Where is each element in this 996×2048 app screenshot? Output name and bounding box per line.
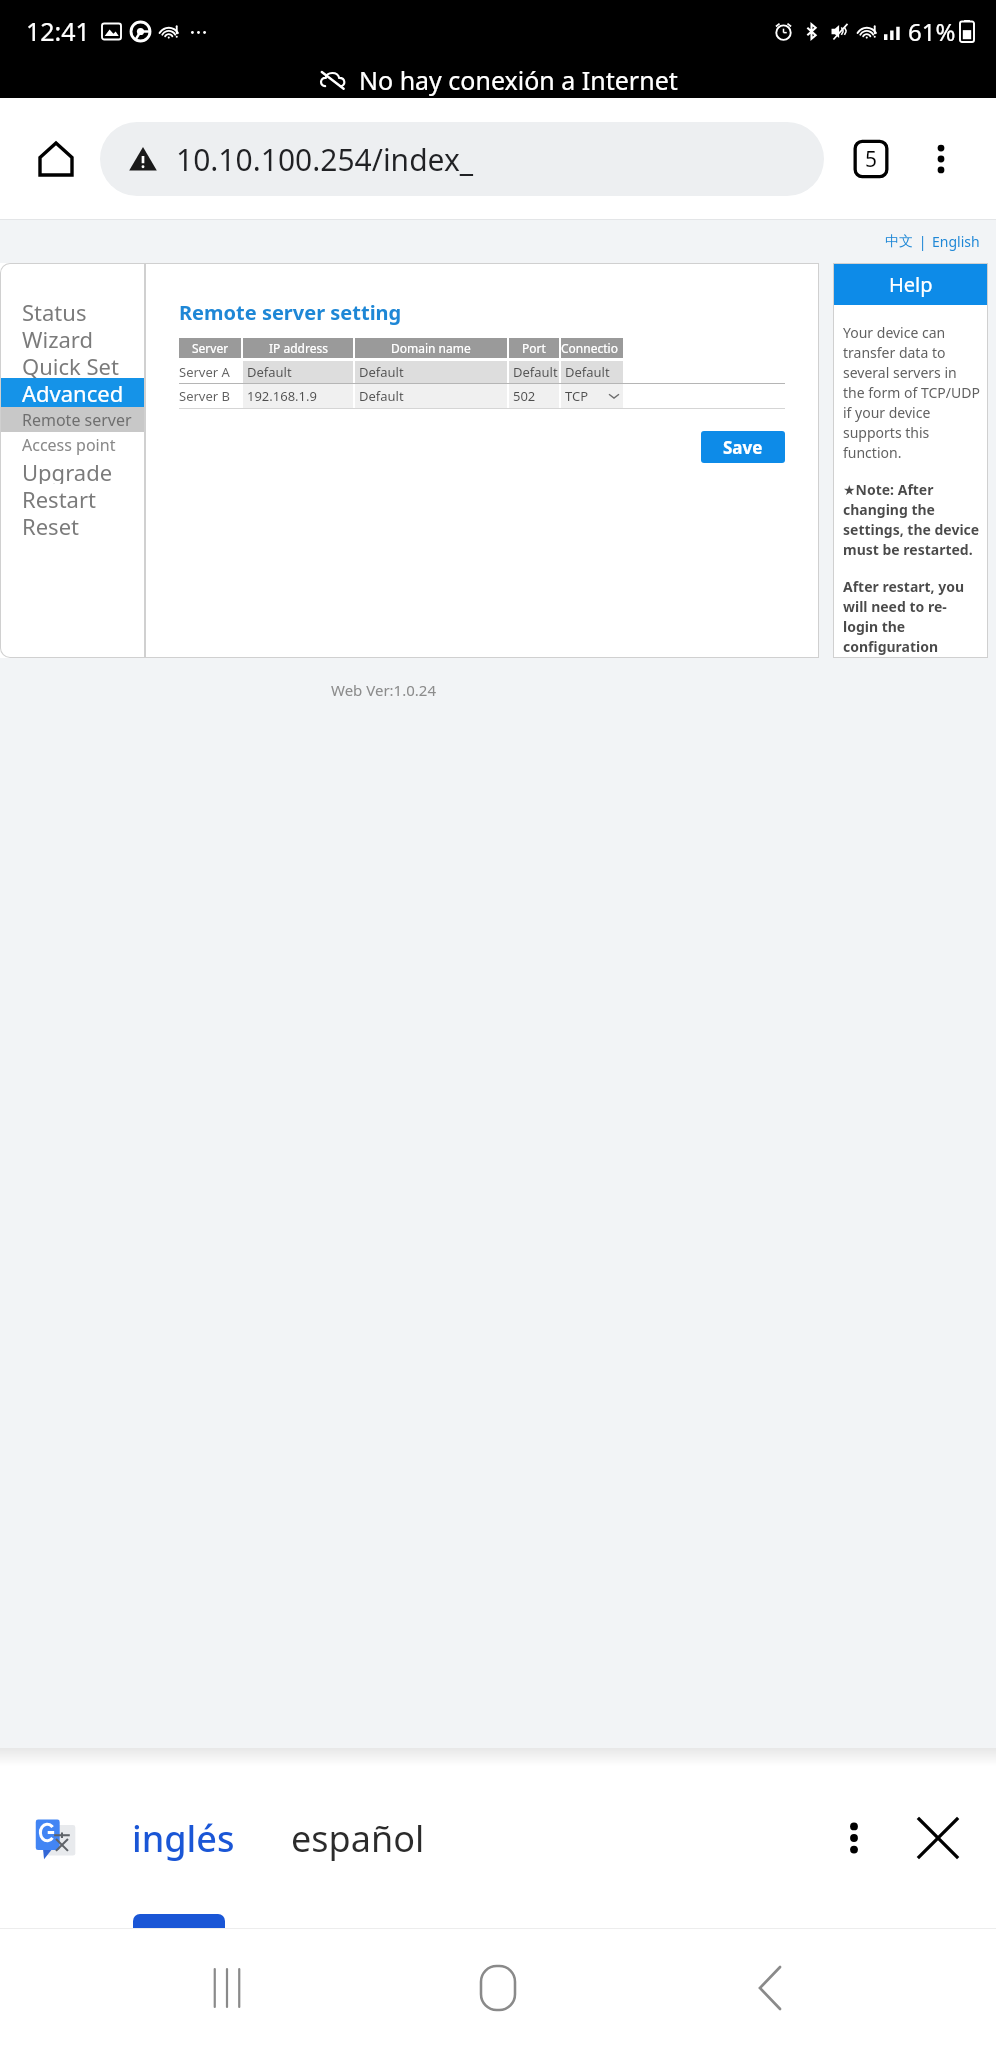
button[interactable]: Reset: [0, 511, 145, 538]
button[interactable]: Default: [355, 384, 507, 408]
button[interactable]: Default: [509, 361, 559, 383]
staticText: español: [291, 1814, 425, 1863]
button[interactable]: Back: [725, 1943, 815, 2033]
staticText: English: [932, 232, 980, 251]
button[interactable]: 中文: [883, 231, 915, 253]
button[interactable]: Upgrade: [0, 457, 145, 484]
staticText: 61%: [908, 15, 956, 48]
button[interactable]: 502: [509, 384, 559, 408]
staticText: IP address: [269, 340, 328, 356]
staticText: Default: [359, 387, 404, 405]
button[interactable]: inglés: [124, 1800, 243, 1877]
staticText: Server B: [179, 387, 230, 405]
staticText: Quick Set: [22, 351, 119, 378]
button[interactable]: Access point: [0, 432, 145, 457]
button[interactable]: TCP: [561, 384, 623, 408]
button[interactable]: Quick Set: [0, 351, 145, 378]
staticText: 192.168.1.9: [247, 387, 317, 405]
staticText: 中文: [885, 233, 913, 251]
button[interactable]: Wizard: [0, 324, 145, 351]
button[interactable]: Recent apps: [182, 1943, 272, 2033]
button[interactable]: Translate options: [824, 1808, 884, 1868]
button[interactable]: Default: [355, 361, 507, 383]
button[interactable]: More options: [910, 128, 972, 190]
staticText: Save: [723, 436, 763, 459]
staticText: Advanced: [22, 378, 124, 407]
staticText: Web Ver:1.0.24: [331, 680, 436, 700]
button[interactable]: English: [930, 230, 982, 253]
staticText: Default: [565, 363, 610, 381]
staticText: TCP: [565, 387, 589, 405]
button[interactable]: Default: [561, 361, 623, 383]
staticText: After restart, you will need to re-login…: [843, 577, 980, 658]
button[interactable]: 192.168.1.9: [243, 384, 353, 408]
button[interactable]: Default: [243, 361, 353, 383]
staticText: No hay conexión a Internet: [359, 63, 678, 97]
staticText: Server: [192, 340, 229, 356]
staticText: 12:41: [26, 14, 90, 48]
button[interactable]: español: [283, 1800, 433, 1877]
staticText: Status: [22, 297, 87, 324]
staticText: Connection: [561, 340, 623, 356]
staticText: Access point: [22, 434, 116, 456]
button[interactable]: Save: [701, 431, 785, 463]
staticText: Default: [513, 363, 558, 381]
button[interactable]: Tabs: 5: [840, 128, 902, 190]
button[interactable]: Status: [0, 297, 145, 324]
button[interactable]: Remote server: [0, 407, 145, 432]
staticText: 10.10.100.254/index_: [176, 139, 474, 180]
staticText: Help: [889, 271, 933, 298]
staticText: Restart: [22, 484, 96, 511]
staticText: Default: [247, 363, 292, 381]
button[interactable]: Advanced: [0, 378, 145, 407]
staticText: ★Note: After changing the settings, the …: [843, 480, 980, 559]
staticText: 502: [513, 387, 536, 405]
staticText: Remote server: [22, 409, 132, 431]
staticText: Your device can transfer data to several…: [843, 323, 980, 462]
button[interactable]: 10.10.100.254/index_: [100, 122, 824, 196]
staticText: Wizard: [22, 324, 93, 351]
staticText: inglés: [132, 1814, 235, 1863]
button[interactable]: Home: [453, 1943, 543, 2033]
staticText: Port: [522, 340, 546, 356]
staticText: Upgrade: [22, 457, 113, 484]
button[interactable]: Restart: [0, 484, 145, 511]
button[interactable]: Google Translate: [28, 1810, 84, 1866]
staticText: Remote server setting: [179, 299, 402, 326]
staticText: 5: [865, 145, 878, 174]
staticText: Domain name: [391, 340, 471, 356]
button[interactable]: Close translate bar: [908, 1808, 968, 1868]
staticText: Server A: [179, 363, 230, 381]
button[interactable]: Home: [24, 127, 88, 191]
staticText: Default: [359, 363, 404, 381]
staticText: |: [915, 232, 930, 251]
staticText: Reset: [22, 511, 79, 538]
